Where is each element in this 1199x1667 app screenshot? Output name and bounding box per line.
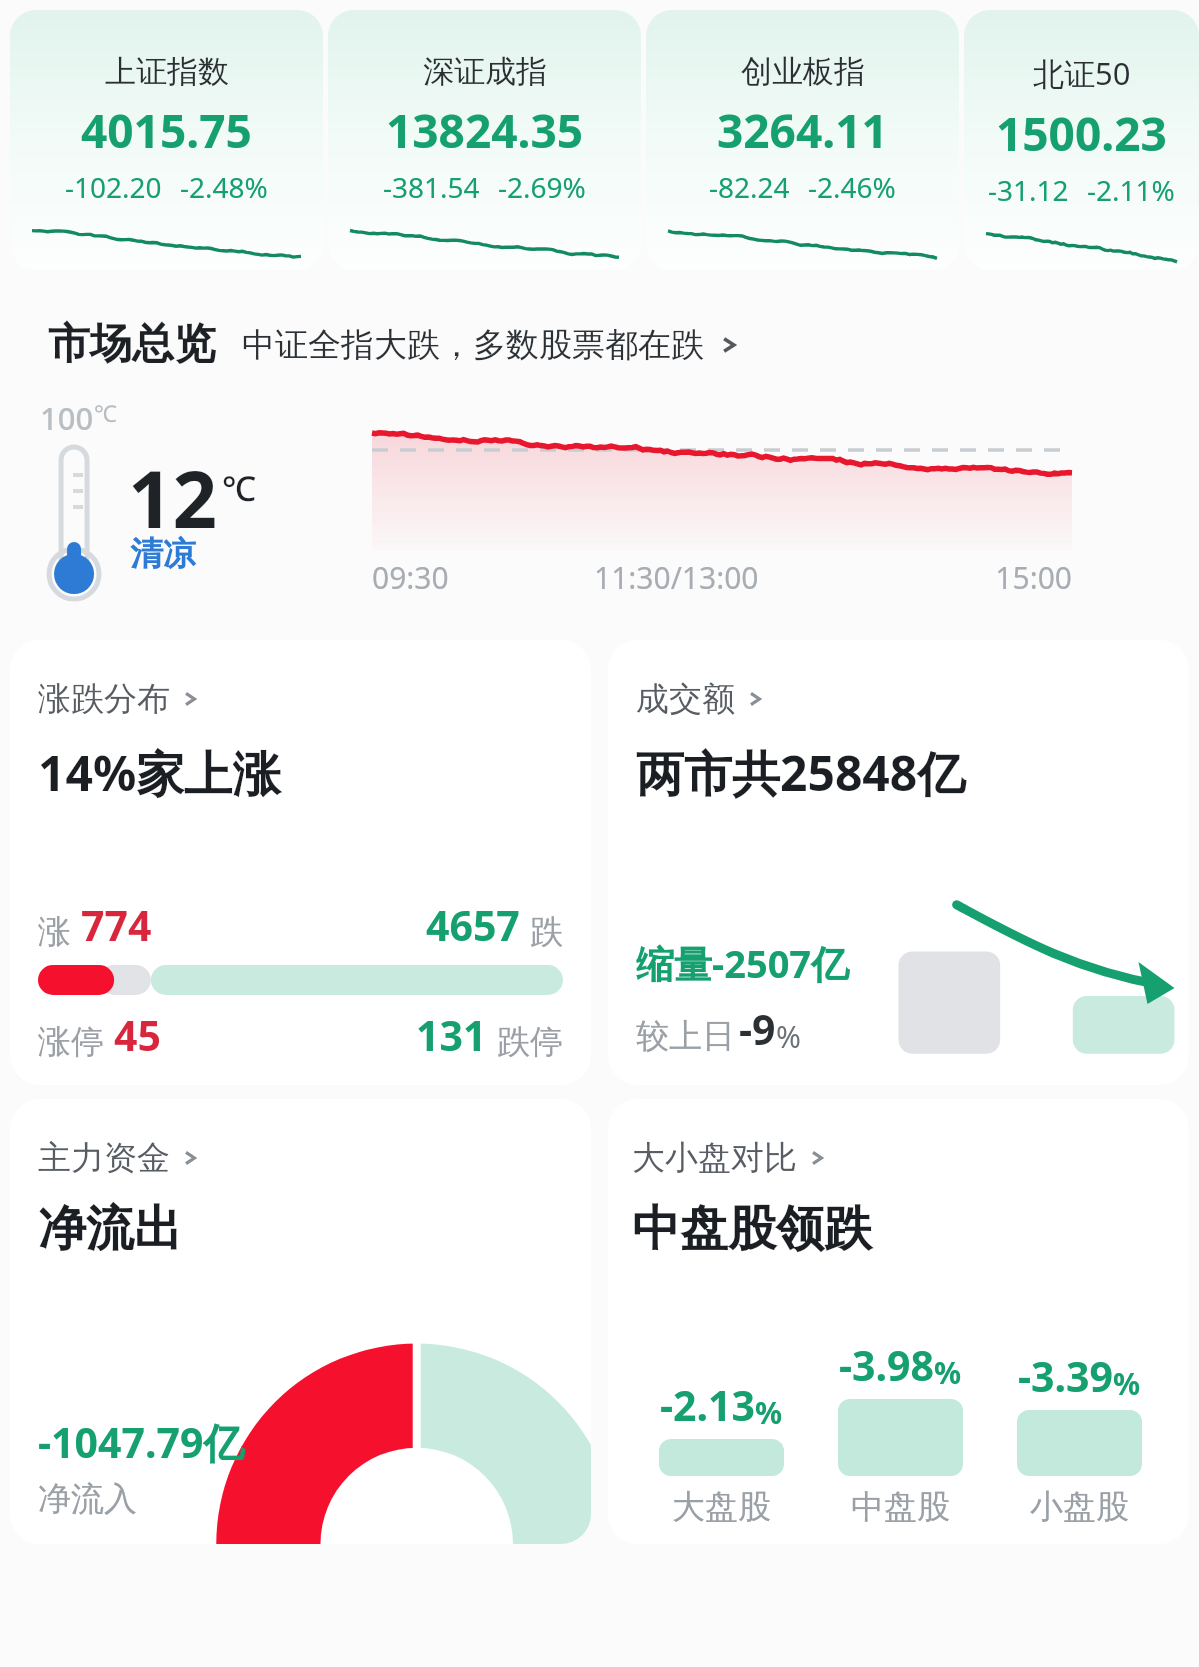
button[interactable]: 大小盘对比 [608, 1099, 1189, 1544]
button[interactable]: 深证成指 [328, 10, 641, 270]
button[interactable]: 创业板指 [646, 10, 959, 270]
staticText: % [934, 1352, 962, 1393]
staticText: ℃ [222, 465, 256, 511]
staticText: 100 [40, 397, 94, 439]
staticText: -82.24 [709, 168, 790, 206]
staticText: 清凉 [130, 533, 196, 575]
button[interactable]: 主力资金 [10, 1099, 591, 1544]
staticText: 创业板指 [741, 52, 865, 91]
staticText: -9 [739, 1001, 776, 1057]
button[interactable]: 涨跌分布 [10, 640, 591, 1085]
staticText: 净流入 [38, 1478, 137, 1520]
staticText: 11:30/13:00 [594, 557, 894, 598]
staticText: 中盘股 [851, 1486, 950, 1528]
staticText: 大盘股 [672, 1486, 771, 1528]
staticText: 3264.11 [717, 99, 888, 162]
staticText: 4015.75 [81, 99, 252, 162]
staticText: 09:30 [372, 557, 594, 598]
staticText: 市场总览 [48, 318, 216, 371]
staticText: 中证全指大跌，多数股票都在跌 [242, 324, 704, 366]
staticText: -2.48% [180, 168, 268, 206]
staticText: 深证成指 [423, 52, 547, 91]
staticText: -1047.79亿 [38, 1414, 245, 1470]
staticText: 12 [128, 445, 218, 551]
staticText: -2.46% [808, 168, 896, 206]
staticText: 小盘股 [1030, 1486, 1129, 1528]
staticText: -381.54 [383, 168, 480, 206]
staticText: -31.12 [988, 171, 1069, 209]
staticText: 上证指数 [105, 52, 229, 91]
staticText: 缩量-2507亿 [636, 937, 850, 989]
staticText: 两市共25848亿 [636, 740, 966, 806]
staticText: 774 [81, 897, 152, 953]
staticText: % [776, 1016, 801, 1057]
staticText: ℃ [94, 397, 117, 428]
staticText: 涨停 [38, 1021, 104, 1063]
staticText: 大小盘对比 [632, 1137, 797, 1179]
staticText: 45 [114, 1007, 161, 1063]
staticText: 涨跌分布 [38, 678, 170, 720]
staticText: 主力资金 [38, 1137, 170, 1179]
staticText: % [755, 1392, 783, 1433]
staticText: 13824.35 [386, 99, 584, 162]
button[interactable]: 市场总览 [48, 318, 1199, 371]
button[interactable]: 上证指数 [10, 10, 323, 270]
staticText: -3.98 [839, 1337, 934, 1393]
staticText: -2.11% [1087, 171, 1175, 209]
staticText: 涨 [38, 911, 71, 953]
staticText: 中盘股领跌 [632, 1199, 872, 1259]
staticText: 131 [416, 1007, 487, 1063]
staticText: 4657 [426, 897, 520, 953]
staticText: % [1113, 1363, 1141, 1404]
staticText: 净流出 [38, 1199, 182, 1259]
staticText: -2.13 [660, 1377, 755, 1433]
staticText: -2.69% [498, 168, 586, 206]
staticText: -102.20 [65, 168, 162, 206]
staticText: 跌停 [497, 1021, 563, 1063]
staticText: 1500.23 [996, 102, 1167, 165]
staticText: 跌 [530, 911, 563, 953]
staticText: -3.39 [1018, 1348, 1113, 1404]
staticText: 14%家上涨 [38, 740, 281, 806]
button[interactable]: 北证50 [964, 10, 1199, 270]
staticText: 成交额 [636, 678, 735, 720]
staticText: 北证50 [1033, 52, 1131, 94]
staticText: 较上日 [636, 1015, 735, 1057]
button[interactable]: 成交额 [608, 640, 1189, 1085]
staticText: 15:00 [894, 557, 1072, 598]
